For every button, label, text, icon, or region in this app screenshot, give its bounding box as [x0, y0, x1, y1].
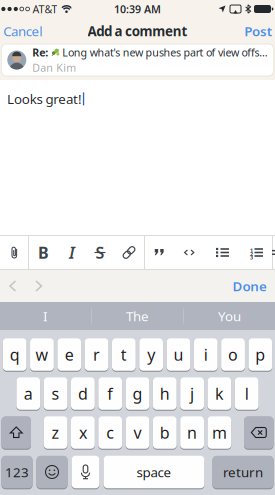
- staticText: 123: [5, 463, 29, 481]
- button[interactable]: Italic: [58, 236, 86, 269]
- button[interactable]: Code: [174, 236, 204, 269]
- button[interactable]: 123: [1, 455, 32, 488]
- button[interactable]: n: [180, 416, 204, 449]
- button[interactable]: a: [16, 377, 40, 410]
- staticText: Dan Kim: [32, 60, 76, 75]
- staticText: S: [95, 242, 104, 263]
- button[interactable]: p: [248, 338, 272, 371]
- staticText: 2: [250, 250, 253, 258]
- button[interactable]: Done: [233, 277, 275, 295]
- staticText: k: [215, 383, 224, 404]
- button[interactable]: c: [98, 416, 122, 449]
- button[interactable]: m: [207, 416, 231, 449]
- button[interactable]: v: [126, 416, 149, 449]
- button[interactable]: Strikethrough: [86, 236, 114, 269]
- staticText: l: [245, 383, 249, 404]
- button[interactable]: Next field: [26, 270, 52, 302]
- staticText: o: [228, 344, 238, 365]
- staticText: You: [218, 307, 241, 325]
- staticText: y: [147, 344, 155, 365]
- staticText: I: [43, 307, 48, 325]
- staticText: a: [24, 383, 33, 404]
- button[interactable]: d: [71, 377, 95, 410]
- button[interactable]: Numbered list: [241, 236, 272, 269]
- button[interactable]: h: [153, 377, 177, 410]
- staticText: n: [187, 422, 197, 443]
- staticText: 3: [250, 254, 253, 261]
- button[interactable]: u: [166, 338, 190, 371]
- button[interactable]: Bulleted list: [204, 236, 241, 269]
- staticText: e: [65, 344, 74, 365]
- button[interactable]: Link: [114, 236, 144, 269]
- staticText: c: [106, 422, 114, 443]
- staticText: Add a comment: [87, 22, 187, 40]
- staticText: Looks great!: [7, 90, 82, 108]
- button[interactable]: o: [221, 338, 245, 371]
- staticText: p: [255, 344, 265, 365]
- staticText: Re:: [32, 45, 48, 59]
- button[interactable]: s: [44, 377, 67, 410]
- staticText: Post: [244, 22, 272, 40]
- staticText: x: [79, 422, 87, 443]
- staticText: space: [136, 463, 171, 481]
- staticText: i: [204, 344, 208, 365]
- staticText: t: [121, 344, 127, 365]
- button[interactable]: g: [126, 377, 149, 410]
- button[interactable]: j: [180, 377, 204, 410]
- button[interactable]: Shift: [1, 416, 31, 449]
- button[interactable]: Post: [244, 17, 275, 45]
- button[interactable]: Cancel: [0, 17, 42, 45]
- staticText: AT&T: [32, 2, 57, 16]
- button[interactable]: q: [3, 338, 26, 371]
- staticText: Cancel: [3, 22, 42, 40]
- button[interactable]: Dictate: [71, 455, 99, 488]
- staticText: b: [160, 422, 170, 443]
- button[interactable]: Re:: [0, 44, 275, 76]
- staticText: I: [69, 242, 75, 263]
- button[interactable]: Quote: [145, 236, 174, 269]
- staticText: j: [190, 383, 194, 404]
- button[interactable]: l: [235, 377, 259, 410]
- staticText: u: [173, 344, 183, 365]
- button[interactable]: e: [57, 338, 81, 371]
- button[interactable]: k: [207, 377, 231, 410]
- staticText: z: [52, 422, 60, 443]
- button[interactable]: The: [92, 302, 183, 330]
- button[interactable]: Delete: [244, 416, 273, 449]
- staticText: q: [10, 344, 20, 365]
- button[interactable]: Attach file: [0, 236, 28, 269]
- button[interactable]: x: [71, 416, 95, 449]
- button[interactable]: I: [0, 302, 91, 330]
- staticText: 10:39 AM: [114, 2, 161, 16]
- button[interactable]: Emoji: [36, 455, 67, 488]
- staticText: Done: [233, 277, 267, 295]
- button[interactable]: y: [139, 338, 163, 371]
- button[interactable]: r: [85, 338, 108, 371]
- button[interactable]: Bold: [29, 236, 58, 269]
- staticText: g: [132, 383, 142, 404]
- staticText: h: [160, 383, 170, 404]
- button[interactable]: You: [184, 302, 275, 330]
- staticText: s: [52, 383, 60, 404]
- staticText: f: [107, 383, 113, 404]
- staticText: w: [35, 344, 48, 365]
- staticText: The: [126, 307, 149, 325]
- staticText: v: [133, 422, 141, 443]
- button[interactable]: i: [194, 338, 218, 371]
- staticText: B: [38, 242, 49, 263]
- staticText: m: [212, 422, 227, 443]
- button[interactable]: return: [212, 455, 273, 488]
- button[interactable]: z: [44, 416, 67, 449]
- button[interactable]: Previous field: [0, 270, 26, 302]
- staticText: return: [223, 463, 263, 481]
- staticText: d: [78, 383, 88, 404]
- button[interactable]: f: [98, 377, 122, 410]
- button[interactable]: b: [153, 416, 177, 449]
- button[interactable]: w: [30, 338, 54, 371]
- staticText: r: [93, 344, 100, 365]
- staticText: Long what's new pushes part of view offs…: [62, 45, 268, 59]
- button[interactable]: t: [112, 338, 136, 371]
- staticText: 1: [250, 247, 253, 254]
- button[interactable]: space: [103, 455, 204, 488]
